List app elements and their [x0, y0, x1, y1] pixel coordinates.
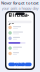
button[interactable] [6, 45, 34, 51]
button[interactable] [6, 36, 34, 41]
button[interactable] [6, 51, 34, 56]
staticText: Birthdays [8, 11, 29, 25]
button[interactable] [6, 25, 34, 30]
staticText: Never forget to text [1, 0, 39, 5]
button[interactable] [6, 30, 34, 36]
button[interactable]: Add a friend [6, 63, 34, 66]
staticText: Add a friend [14, 59, 26, 70]
staticText: your pals a happy day [1, 5, 38, 11]
